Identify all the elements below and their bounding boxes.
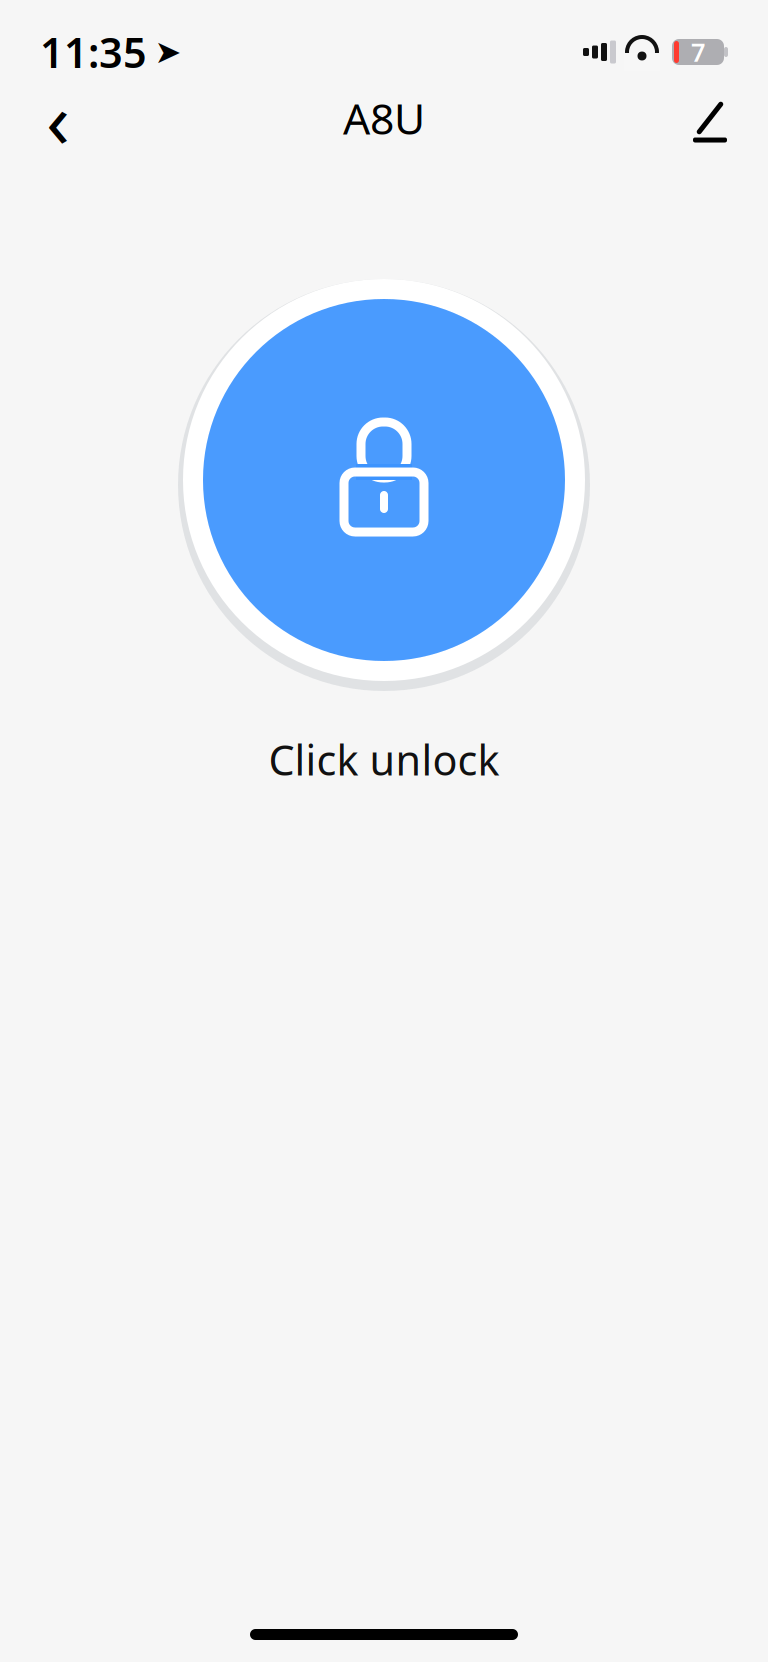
staticText: ‹ <box>46 67 70 169</box>
staticText: Click unlock <box>268 732 499 787</box>
staticText: 11:35 <box>40 25 147 79</box>
button[interactable]: Back <box>26 86 90 150</box>
button[interactable]: Edit <box>678 86 742 150</box>
staticText: A8U <box>343 90 425 146</box>
button[interactable]: Unlock <box>174 270 594 690</box>
staticText: 7 <box>691 35 705 69</box>
staticText: ➤ <box>154 34 181 70</box>
